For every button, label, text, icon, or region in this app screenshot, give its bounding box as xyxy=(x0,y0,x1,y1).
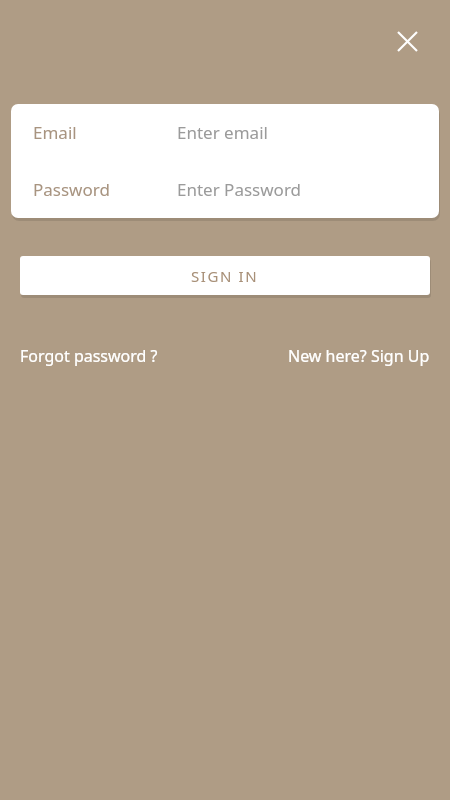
button[interactable]: SIGN IN xyxy=(20,256,430,295)
staticText: Enter email xyxy=(177,121,268,144)
staticText: Forgot password ? xyxy=(20,345,158,367)
button[interactable]: Password xyxy=(11,161,439,218)
staticText: Email xyxy=(33,121,77,144)
button[interactable]: Email xyxy=(11,104,439,161)
button[interactable]: Close xyxy=(387,21,427,61)
staticText: New here? Sign Up xyxy=(288,345,430,367)
button[interactable]: Forgot password ? xyxy=(14,342,164,370)
staticText: Password xyxy=(33,178,110,201)
staticText: SIGN IN xyxy=(191,266,259,286)
staticText: Enter Password xyxy=(177,178,302,201)
button[interactable]: New here? Sign Up xyxy=(282,342,436,370)
